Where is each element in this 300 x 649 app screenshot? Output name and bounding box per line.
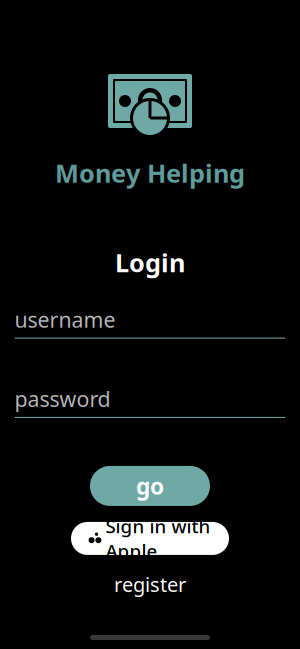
button[interactable]: Sign in with Apple — [71, 522, 229, 555]
staticText: Sign in with Apple — [105, 514, 210, 563]
button[interactable]: go — [90, 466, 210, 506]
staticText: Login — [115, 246, 185, 279]
button[interactable]: register — [98, 565, 202, 603]
staticText: Money Helping — [55, 156, 245, 190]
staticText: username — [14, 305, 115, 334]
staticText: go — [136, 471, 164, 501]
staticText: password — [14, 385, 110, 413]
staticText: register — [114, 571, 186, 597]
